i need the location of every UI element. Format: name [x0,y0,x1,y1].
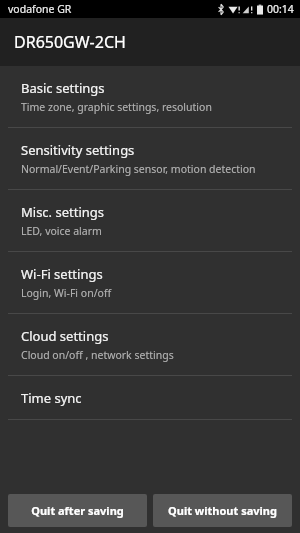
staticText: Time zone, graphic settings, resolution [21,100,212,114]
staticText: Cloud settings [21,327,109,345]
button[interactable]: Wi-Fi settings [0,252,300,313]
staticText: DR650GW-2CH [14,31,126,53]
staticText: vodafone GR [8,2,72,16]
staticText: Cloud on/off , network settings [21,348,174,362]
staticText: Sensitivity settings [21,141,135,159]
button[interactable]: Quit without saving [153,494,292,527]
button[interactable]: Misc. settings [0,190,300,251]
staticText: Normal/Event/Parking sensor, motion dete… [21,162,256,176]
button[interactable]: Sensitivity settings [0,128,300,189]
staticText: Misc. settings [21,203,105,221]
staticText: Login, Wi-Fi on/off [21,286,112,300]
staticText: 00:14 [267,2,294,16]
staticText: Wi-Fi settings [21,265,103,283]
button[interactable]: Cloud settings [0,314,300,375]
button[interactable]: Basic settings [0,66,300,127]
button[interactable]: Quit after saving [8,494,147,527]
staticText: Time sync [21,389,82,407]
staticText: LED, voice alarm [21,224,102,238]
button[interactable]: Time sync [0,376,300,419]
staticText: Basic settings [21,79,105,97]
staticText: Quit without saving [168,503,277,518]
staticText: Quit after saving [31,503,124,518]
